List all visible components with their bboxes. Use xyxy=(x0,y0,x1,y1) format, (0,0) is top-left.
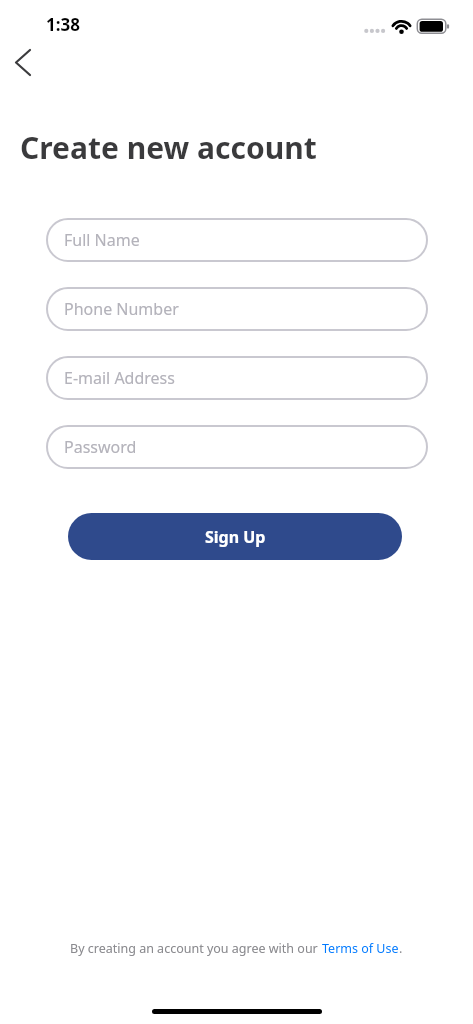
staticText: 1:38 xyxy=(46,13,80,36)
button[interactable]: E-mail Address xyxy=(46,356,428,400)
staticText: Create new account xyxy=(20,127,317,168)
button[interactable]: Sign Up xyxy=(68,513,402,560)
staticText: . xyxy=(399,940,403,957)
staticText: Password xyxy=(64,436,137,458)
button[interactable]: Password xyxy=(46,425,428,469)
button[interactable]: Terms of Use xyxy=(322,940,399,957)
staticText: Sign Up xyxy=(205,526,266,548)
staticText: Phone Number xyxy=(64,298,179,320)
staticText: Full Name xyxy=(64,229,140,251)
button[interactable]: Full Name xyxy=(46,218,428,262)
staticText: E-mail Address xyxy=(64,367,175,389)
staticText: By creating an account you agree with ou… xyxy=(70,940,322,957)
button[interactable] xyxy=(4,40,48,84)
button[interactable]: Phone Number xyxy=(46,287,428,331)
